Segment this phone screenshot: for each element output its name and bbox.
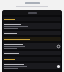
button[interactable] bbox=[3, 17, 61, 21]
button[interactable] bbox=[3, 57, 61, 61]
button[interactable] bbox=[3, 31, 61, 35]
button[interactable]: Toggle setting bbox=[3, 63, 61, 69]
button[interactable] bbox=[3, 23, 61, 29]
button[interactable] bbox=[3, 51, 61, 55]
button[interactable]: Toggle setting bbox=[3, 43, 61, 49]
button[interactable] bbox=[3, 37, 61, 41]
button[interactable]: Toggle setting bbox=[57, 45, 60, 48]
button[interactable]: Toggle setting bbox=[57, 65, 60, 68]
